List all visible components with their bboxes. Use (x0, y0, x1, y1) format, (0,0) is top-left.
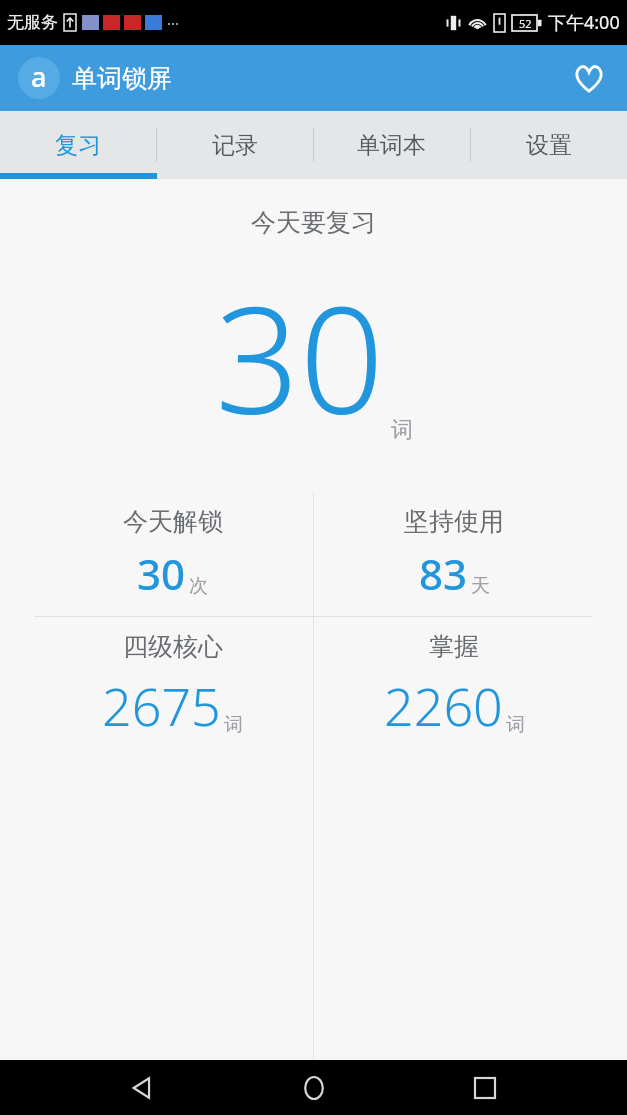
staticText: 天 (471, 574, 490, 598)
staticText: 83 (419, 545, 468, 602)
button[interactable]: Recents (455, 1060, 515, 1115)
button[interactable]: 设置 (470, 111, 627, 179)
staticText: 设置 (526, 131, 572, 160)
staticText: 今天要复习 (251, 207, 376, 238)
staticText: 记录 (212, 131, 258, 160)
staticText: 无服务 (7, 12, 58, 33)
staticText: 复习 (55, 131, 101, 160)
staticText: a (31, 58, 47, 95)
staticText: 次 (189, 574, 208, 598)
staticText: 30 (137, 545, 186, 602)
staticText: 词 (391, 416, 413, 444)
staticText: 坚持使用 (404, 506, 504, 537)
staticText: 单词锁屏 (72, 63, 172, 94)
staticText: ··· (167, 13, 180, 33)
button[interactable]: 单词本 (313, 111, 470, 179)
staticText: 四级核心 (123, 631, 223, 662)
staticText: 2675 (102, 670, 221, 741)
button[interactable]: 复习 (0, 111, 156, 179)
staticText: 词 (506, 713, 525, 737)
staticText: 词 (224, 713, 243, 737)
staticText: 掌握 (429, 631, 479, 662)
button[interactable]: 记录 (156, 111, 313, 179)
button[interactable]: Back (112, 1060, 172, 1115)
button[interactable]: Favorite (565, 54, 613, 102)
staticText: 52 (519, 16, 532, 31)
staticText: 单词本 (357, 131, 426, 160)
staticText: 30 (215, 256, 385, 458)
staticText: 今天解锁 (123, 506, 223, 537)
staticText: 下午4:00 (548, 10, 620, 35)
button[interactable]: Home (284, 1060, 344, 1115)
staticText: 2260 (384, 670, 503, 741)
